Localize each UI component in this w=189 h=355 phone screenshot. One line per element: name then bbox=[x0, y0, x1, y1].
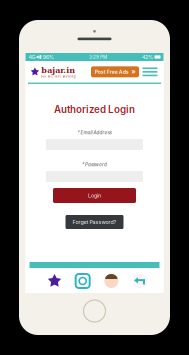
staticText: 96% bbox=[43, 54, 54, 60]
staticText: Login bbox=[88, 192, 101, 199]
button[interactable]: Favourites bbox=[47, 274, 61, 288]
staticText: 3:29 PM bbox=[89, 54, 107, 60]
button[interactable]: Menu bbox=[139, 62, 161, 82]
button[interactable]: bajar.in bbox=[25, 65, 76, 78]
staticText: bajar.in bbox=[41, 65, 75, 75]
staticText: » bbox=[131, 68, 135, 76]
staticText: * Password bbox=[82, 162, 107, 167]
button[interactable]: Camera bbox=[75, 273, 90, 288]
staticText: Post Free Ads bbox=[95, 69, 129, 75]
staticText: 42% bbox=[142, 54, 153, 60]
staticText: 4G bbox=[28, 54, 35, 60]
button[interactable]: Forget Password? bbox=[65, 215, 123, 229]
button[interactable]: Back bbox=[132, 273, 147, 288]
button[interactable]: Post Free Ads bbox=[91, 66, 139, 77]
button[interactable]: Login bbox=[53, 188, 136, 203]
staticText: * Email Address bbox=[77, 130, 111, 135]
staticText: Forget Password? bbox=[72, 219, 116, 225]
staticText: Authorized Login bbox=[54, 104, 135, 115]
staticText: buy sell rent anything bbox=[41, 75, 76, 78]
button[interactable]: Profile bbox=[104, 273, 119, 288]
